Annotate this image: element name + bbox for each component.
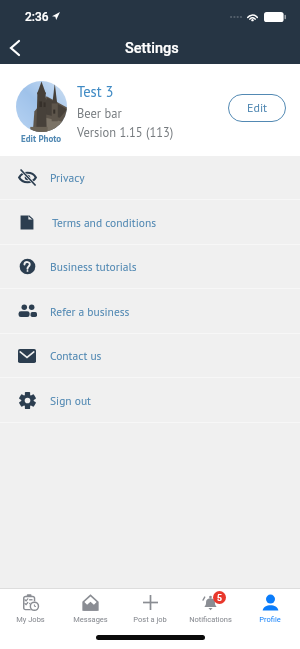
button[interactable]: My Jobs bbox=[0, 589, 60, 629]
staticText: Beer bar bbox=[77, 105, 122, 121]
staticText: 2:36 bbox=[25, 10, 49, 24]
staticText: Edit bbox=[247, 100, 268, 116]
staticText: My Jobs bbox=[16, 615, 45, 624]
button[interactable]: Messages bbox=[60, 589, 120, 629]
button[interactable]: Sign out bbox=[0, 378, 300, 422]
button[interactable]: Privacy bbox=[0, 156, 300, 199]
staticText: Contact us bbox=[50, 348, 102, 363]
button[interactable]: Refer a business bbox=[0, 289, 300, 333]
button[interactable]: Business tutorials bbox=[0, 245, 300, 288]
staticText: Settings bbox=[125, 40, 179, 57]
staticText: Privacy bbox=[50, 170, 85, 185]
button[interactable]: 5 bbox=[180, 589, 240, 629]
staticText: Refer a business bbox=[50, 304, 130, 319]
staticText: Sign out bbox=[50, 393, 91, 408]
staticText: Profile bbox=[259, 615, 281, 624]
button[interactable]: Edit Photo bbox=[16, 81, 67, 145]
staticText: Post a job bbox=[133, 615, 167, 624]
staticText: Test 3 bbox=[77, 82, 114, 101]
staticText: 5 bbox=[217, 593, 222, 603]
button[interactable]: Post a job bbox=[120, 589, 180, 629]
staticText: Terms and conditions bbox=[52, 215, 157, 230]
staticText: Business tutorials bbox=[50, 259, 137, 274]
staticText: Notifications bbox=[189, 615, 232, 624]
staticText: Edit Photo bbox=[21, 133, 62, 145]
staticText: Messages bbox=[73, 615, 108, 624]
staticText: Version 1.15 (113) bbox=[77, 124, 174, 140]
button[interactable]: Edit bbox=[228, 94, 286, 122]
button[interactable]: Back bbox=[0, 30, 34, 64]
button[interactable]: Contact us bbox=[0, 334, 300, 377]
button[interactable]: Profile bbox=[240, 589, 300, 629]
button[interactable]: Terms and conditions bbox=[0, 200, 300, 244]
